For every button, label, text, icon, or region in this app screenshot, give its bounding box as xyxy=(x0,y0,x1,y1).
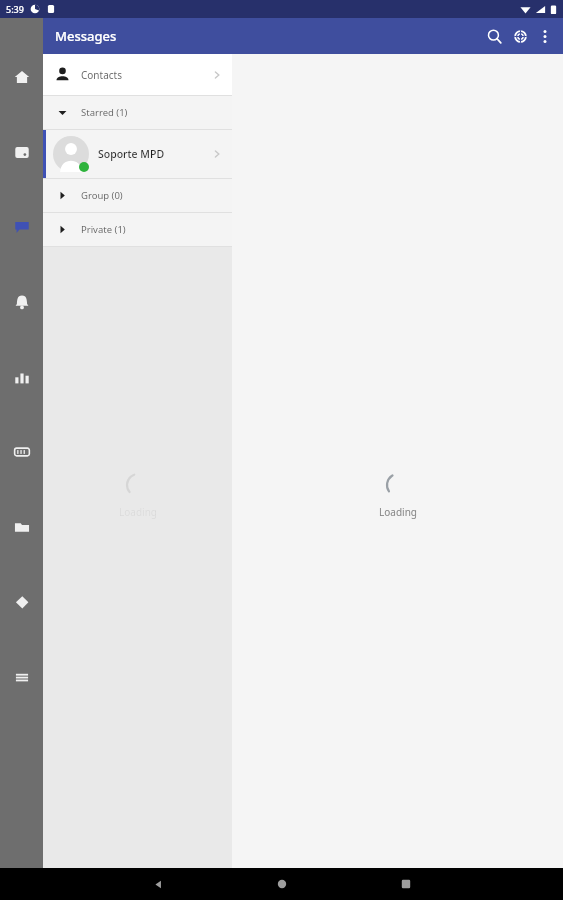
button[interactable]: Contacts xyxy=(43,54,232,95)
button[interactable]: Search xyxy=(481,23,507,49)
button[interactable]: Back xyxy=(141,868,175,900)
staticText: Soporte MPD xyxy=(98,147,165,161)
button[interactable]: Reports xyxy=(0,364,43,390)
button[interactable]: Starred (1) xyxy=(43,96,232,129)
staticText: Messages xyxy=(55,27,117,45)
staticText: Private (1) xyxy=(81,223,126,236)
button[interactable]: Group (0) xyxy=(43,179,232,212)
button[interactable]: Soporte MPD xyxy=(43,130,232,178)
button[interactable]: Recent apps xyxy=(389,868,423,900)
staticText: Contacts xyxy=(81,68,122,82)
staticText: Starred (1) xyxy=(81,106,128,119)
button[interactable]: Notifications xyxy=(0,289,43,315)
staticText: Group (0) xyxy=(81,189,123,202)
button[interactable]: Files xyxy=(0,514,43,540)
button[interactable]: Private (1) xyxy=(43,213,232,246)
button[interactable]: Messages xyxy=(0,214,43,240)
staticText: 5:39 xyxy=(6,3,24,15)
button[interactable]: More options xyxy=(533,24,557,48)
staticText: Loading xyxy=(379,505,417,519)
button[interactable]: Home xyxy=(265,868,299,900)
button[interactable]: Tags xyxy=(0,589,43,615)
staticText: Loading xyxy=(119,505,157,519)
button[interactable]: Menu xyxy=(0,664,43,690)
button[interactable]: Language xyxy=(507,23,533,49)
button[interactable]: Card xyxy=(0,439,43,465)
button[interactable]: Calendar xyxy=(0,139,43,165)
button[interactable]: Home xyxy=(0,64,43,90)
